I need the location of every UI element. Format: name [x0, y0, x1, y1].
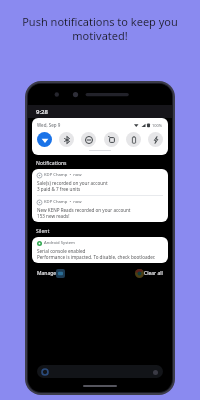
staticText: Clear all	[144, 270, 163, 277]
button[interactable]: Auto rotate	[104, 132, 119, 147]
staticText: KDP Champ • now	[44, 172, 82, 178]
button[interactable]: Bluetooth	[59, 132, 74, 147]
staticText: 100%	[152, 123, 163, 128]
staticText: Push notifications to keep you motivated…	[12, 14, 188, 43]
button[interactable]: KDP Champ • now	[32, 196, 168, 222]
staticText: New KENP Reads recorded on your account	[37, 207, 131, 213]
staticText: Notifications	[36, 160, 67, 167]
staticText: Silent	[36, 228, 50, 235]
staticText: Manage	[37, 270, 57, 277]
button[interactable]: Wi-Fi	[37, 132, 52, 147]
button[interactable]: Manage	[35, 268, 59, 279]
button[interactable]: Clear all	[142, 268, 165, 279]
button[interactable]	[37, 365, 163, 378]
staticText: KDP Champ • now	[44, 199, 82, 205]
button[interactable]: Android System	[32, 237, 168, 263]
button[interactable]: Do Not Disturb	[81, 132, 96, 147]
staticText: 153 new reads!	[37, 213, 70, 219]
staticText: Serial console enabled	[37, 248, 86, 254]
staticText: Sale(s) recorded on your account	[37, 180, 108, 186]
staticText: 9:28	[36, 108, 48, 116]
staticText: Wed, Sep 9	[37, 122, 61, 128]
button[interactable]: KDP Champ • now	[32, 169, 168, 195]
staticText: 3 paid & 7 free units	[37, 186, 81, 192]
staticText: Android System	[44, 240, 75, 246]
button[interactable]: Battery saver	[126, 132, 141, 147]
staticText: Performance is impacted. To disable, che…	[37, 254, 156, 260]
button[interactable]: Flashlight	[148, 132, 163, 147]
